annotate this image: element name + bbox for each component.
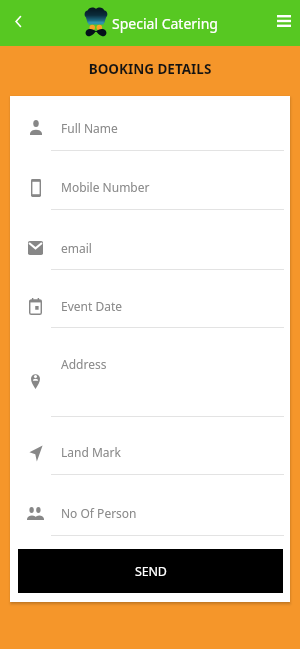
button[interactable]: Mobile Number [10, 151, 290, 210]
staticText: Special Catering [112, 14, 218, 33]
staticText: BOOKING DETAILS [0, 60, 300, 78]
staticText: Land Mark [61, 444, 121, 460]
button[interactable]: Event Date [10, 270, 290, 328]
staticText: email [61, 240, 92, 256]
button[interactable]: email [10, 210, 290, 270]
staticText: Event Date [61, 298, 122, 314]
button[interactable]: Address [10, 328, 290, 417]
staticText: No Of Person [61, 505, 137, 521]
staticText: Mobile Number [61, 179, 150, 195]
staticText: Full Name [61, 120, 118, 136]
button[interactable]: Menu [269, 8, 297, 33]
button[interactable]: Back [6, 9, 30, 33]
staticText: Address [61, 356, 107, 372]
button[interactable]: Land Mark [10, 416, 290, 475]
button[interactable]: Full Name [10, 96, 290, 151]
button[interactable]: No Of Person [10, 475, 290, 536]
button[interactable]: SEND [18, 549, 283, 593]
staticText: SEND [135, 563, 167, 580]
